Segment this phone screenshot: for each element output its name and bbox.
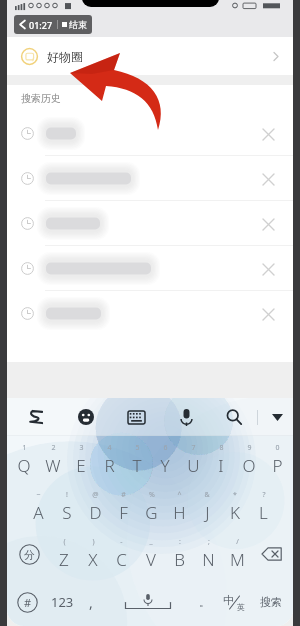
button[interactable]: !	[53, 483, 81, 530]
button[interactable]: 7	[179, 436, 207, 483]
staticText: D	[89, 501, 102, 524]
button[interactable]: 删除该条搜索记录	[7, 291, 293, 336]
button[interactable]: 删除该条搜索记录	[257, 303, 279, 325]
button[interactable]: 中英文切换	[216, 578, 251, 626]
button[interactable]: _	[136, 530, 165, 578]
staticText: 2	[51, 443, 56, 453]
button[interactable]: 退格	[252, 530, 291, 578]
staticText: Z	[59, 548, 69, 571]
staticText: /	[236, 537, 239, 547]
button[interactable]: ,	[79, 578, 103, 626]
staticText: 123	[51, 593, 74, 611]
staticText: ;	[208, 537, 210, 547]
staticText: 搜索历史	[21, 92, 61, 105]
staticText: @	[92, 490, 99, 500]
button[interactable]: 4	[95, 436, 123, 483]
staticText: G	[145, 501, 158, 524]
staticText: &	[204, 490, 210, 500]
staticText: 6	[163, 443, 168, 453]
button[interactable]: 删除该条搜索记录	[257, 213, 279, 235]
button[interactable]: 123	[45, 578, 79, 626]
button[interactable]: @	[81, 483, 109, 530]
button[interactable]: 符号	[9, 578, 45, 626]
button[interactable]: 语音输入	[173, 404, 199, 430]
button[interactable]: 键盘布局	[123, 404, 149, 430]
button[interactable]: 删除该条搜索记录	[257, 168, 279, 190]
staticText: (	[63, 537, 66, 547]
button[interactable]: 删除该条搜索记录	[7, 246, 293, 291]
button[interactable]: 删除该条搜索记录	[7, 201, 293, 246]
staticText: %	[149, 490, 155, 500]
staticText: 8	[219, 443, 224, 453]
staticText: J	[205, 501, 210, 524]
button[interactable]: %	[137, 483, 165, 530]
staticText: M	[230, 548, 245, 571]
button[interactable]: 删除该条搜索记录	[7, 156, 293, 201]
staticText: 。	[199, 595, 210, 609]
button[interactable]: )	[78, 530, 107, 578]
staticText: 搜索	[260, 595, 282, 609]
staticText: 5	[135, 443, 140, 453]
button[interactable]: 收起键盘	[265, 405, 289, 429]
button[interactable]: 0	[263, 436, 291, 483]
staticText: C	[116, 548, 127, 571]
button[interactable]: 搜索	[251, 578, 291, 626]
staticText: 3	[79, 443, 84, 453]
button[interactable]: #	[109, 483, 137, 530]
staticText: V	[146, 548, 156, 571]
button[interactable]: 删除该条搜索记录	[7, 111, 293, 156]
button[interactable]: 1	[9, 436, 38, 483]
button[interactable]: 。	[192, 578, 216, 626]
staticText: E	[76, 454, 86, 477]
button[interactable]: /	[223, 530, 252, 578]
staticText: :	[179, 537, 181, 547]
button[interactable]: 分词	[9, 530, 49, 578]
button[interactable]: 2	[38, 436, 67, 483]
staticText: 好物圈	[47, 49, 83, 64]
button[interactable]: ;	[194, 530, 223, 578]
button[interactable]: -	[107, 530, 136, 578]
button[interactable]: 输入法设置	[23, 404, 49, 430]
staticText: !	[66, 490, 68, 500]
button[interactable]: ~	[24, 483, 53, 530]
staticText: 4	[107, 443, 112, 453]
staticText: X	[88, 548, 98, 571]
staticText: 7	[191, 443, 196, 453]
staticText: O	[242, 454, 256, 477]
staticText: 9	[247, 443, 252, 453]
staticText: R	[104, 454, 115, 477]
button[interactable]: 表情	[73, 404, 99, 430]
staticText: U	[187, 454, 200, 477]
button[interactable]: *	[221, 483, 249, 530]
staticText: *	[233, 490, 237, 500]
button[interactable]: 搜索	[221, 404, 247, 430]
staticText: F	[119, 501, 128, 524]
staticText: ,	[89, 593, 93, 612]
staticText: N	[202, 548, 215, 571]
button[interactable]: 空格	[103, 578, 192, 626]
button[interactable]: ^	[165, 483, 193, 530]
button[interactable]: 5	[123, 436, 151, 483]
button[interactable]: 3	[67, 436, 95, 483]
button[interactable]: 删除该条搜索记录	[257, 123, 279, 145]
button[interactable]: 01:27	[14, 15, 92, 34]
staticText: B	[174, 548, 185, 571]
button[interactable]: 9	[235, 436, 263, 483]
staticText: 英	[237, 602, 245, 612]
button[interactable]: 删除该条搜索记录	[257, 258, 279, 280]
button[interactable]: (	[49, 530, 78, 578]
button[interactable]: &	[193, 483, 221, 530]
staticText: #	[121, 490, 126, 500]
button[interactable]: ?	[249, 483, 277, 530]
button[interactable]: 好物圈	[7, 37, 293, 75]
staticText: ?	[262, 490, 266, 500]
button[interactable]: 8	[207, 436, 235, 483]
staticText: H	[173, 501, 186, 524]
button[interactable]: :	[165, 530, 194, 578]
staticText: Y	[160, 454, 170, 477]
staticText: Q	[17, 454, 31, 477]
staticText: 0	[275, 443, 280, 453]
button[interactable]: 6	[151, 436, 179, 483]
staticText: 中	[223, 593, 234, 607]
staticText: K	[230, 501, 240, 524]
